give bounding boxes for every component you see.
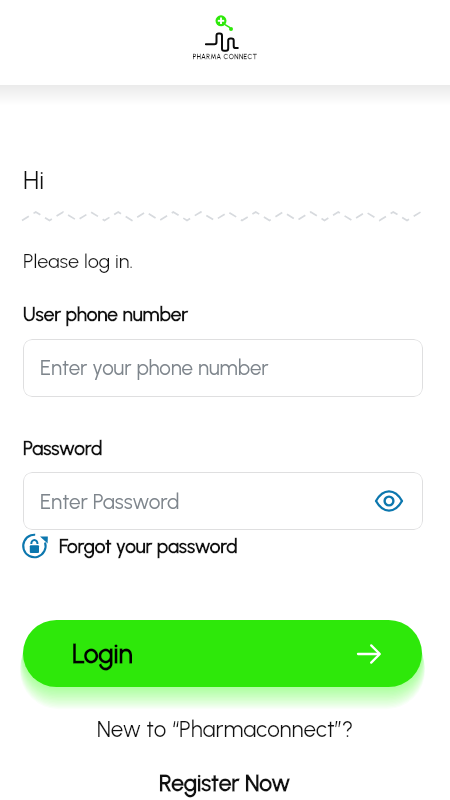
- staticText: Enter your phone number: [40, 356, 269, 381]
- button[interactable]: Forgot your password: [20, 529, 241, 563]
- staticText: User phone number: [23, 303, 189, 326]
- staticText: New to “Pharmaconnect”?: [0, 716, 450, 743]
- staticText: PHARMA CONNECT: [0, 53, 450, 61]
- staticText: Enter Password: [40, 489, 180, 514]
- other: Show password: [374, 486, 404, 516]
- button[interactable]: Enter your phone number: [23, 339, 423, 397]
- button[interactable]: Register Now: [153, 766, 297, 799]
- staticText: Login: [72, 638, 133, 670]
- other: Login: [357, 642, 381, 666]
- other: Forgot your password: [23, 532, 51, 560]
- staticText: Please log in.: [23, 249, 134, 273]
- staticText: Hi: [23, 164, 45, 195]
- staticText: Forgot your password: [59, 535, 238, 558]
- button[interactable]: Enter Password: [23, 472, 423, 530]
- staticText: Password: [23, 437, 103, 460]
- button[interactable]: Login: [23, 620, 422, 687]
